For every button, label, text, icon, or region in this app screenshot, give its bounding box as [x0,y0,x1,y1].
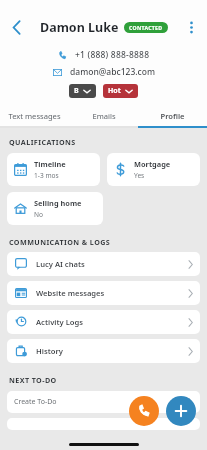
button[interactable]: Mortgage [107,153,200,186]
staticText: Hot [108,86,121,96]
staticText: Damon Luke [40,19,119,36]
button[interactable]: Profile [138,106,207,126]
button[interactable]: Text messages [0,106,69,126]
staticText: Timeline [34,159,66,169]
staticText: Selling home [34,198,82,208]
staticText: Text messages [8,111,61,121]
staticText: +1 (888) 888-8888 [75,49,150,61]
staticText: QUALIFICATIONS [9,137,76,147]
staticText: No [34,210,44,219]
staticText: 1-3 mos [34,171,59,180]
staticText: Website messages [36,288,188,298]
staticText: Mortgage [134,159,171,169]
button[interactable]: Activity Logs [7,310,200,334]
button[interactable]: More options [175,14,207,40]
button[interactable] [7,418,200,430]
staticText: Emails [92,111,116,121]
button[interactable]: Timeline [7,153,100,186]
staticText: History [36,346,188,356]
button[interactable]: Add [166,396,196,426]
button[interactable]: +1 (888) 888-8888 [0,49,207,61]
staticText: Create To-Do [14,397,188,407]
button[interactable]: CONTACTED [124,22,168,33]
button[interactable]: Website messages [7,281,200,305]
staticText: NEXT TO-DO [9,375,57,385]
button[interactable]: damon@abc123.com [0,66,207,78]
staticText: Activity Logs [36,317,188,327]
button[interactable]: Emails [69,106,138,126]
staticText: Lucy AI chats [36,259,188,269]
staticText: CONTACTED [129,24,163,31]
button[interactable]: B [69,84,96,98]
staticText: damon@abc123.com [70,66,155,78]
button[interactable]: Hot [103,84,138,98]
staticText: Yes [134,171,145,180]
button[interactable]: Back [0,14,32,40]
button[interactable]: Create To-Do [7,391,200,413]
staticText: Profile [160,111,185,121]
staticText: COMMUNICATION & LOGS [9,237,111,247]
button[interactable]: History [7,339,200,363]
button[interactable]: Lucy AI chats [7,252,200,276]
staticText: B [74,86,79,96]
button[interactable]: Selling home [7,192,103,225]
button[interactable]: Call [129,396,159,426]
